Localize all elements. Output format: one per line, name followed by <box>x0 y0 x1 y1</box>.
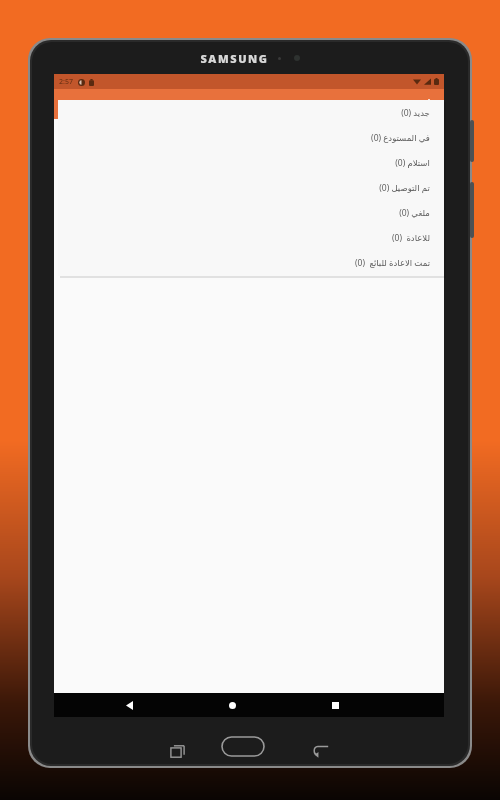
staticText: في المستودع (0) <box>371 132 430 144</box>
staticText: تم التوصيل (0) <box>379 182 430 194</box>
button[interactable]: ملغي (0) <box>58 200 444 225</box>
staticText: تمت الاعادة للبائع (0) <box>355 257 430 269</box>
staticText: استلام (0) <box>395 157 430 169</box>
button[interactable]: للاعادة (0) <box>58 225 444 250</box>
staticText: مناديب MiniTech Driver <box>201 98 297 110</box>
button[interactable]: Recent apps <box>318 693 352 717</box>
button[interactable]: جديد (0) <box>58 100 444 125</box>
button[interactable]: Recents <box>166 740 188 762</box>
button[interactable]: تم التوصيل (0) <box>58 175 444 200</box>
button[interactable]: Back <box>112 693 146 717</box>
staticText: للاعادة (0) <box>392 232 430 244</box>
button[interactable]: تمت الاعادة للبائع (0) <box>58 250 444 275</box>
staticText: 2:57 <box>59 77 73 87</box>
button[interactable]: Home <box>215 693 249 717</box>
button[interactable]: استلام (0) <box>58 150 444 175</box>
button[interactable]: More options <box>420 92 438 116</box>
staticText: SAMSUNG <box>200 51 269 66</box>
button[interactable]: Back <box>310 740 332 762</box>
staticText: جديد (0) <box>401 107 430 119</box>
button[interactable]: في المستودع (0) <box>58 125 444 150</box>
button[interactable]: Home <box>222 737 264 756</box>
staticText: ملغي (0) <box>399 207 430 219</box>
